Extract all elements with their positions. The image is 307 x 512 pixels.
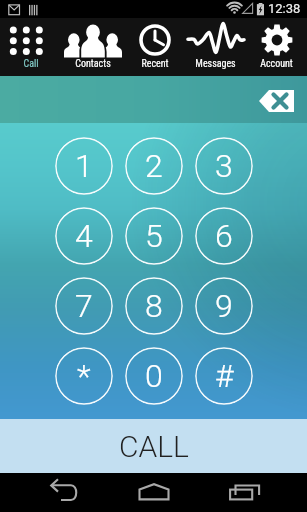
button[interactable]: 7 — [55, 277, 113, 335]
button[interactable]: Messages — [185, 18, 246, 76]
button[interactable]: Recent apps — [216, 473, 274, 512]
button[interactable]: Contacts — [62, 18, 124, 76]
staticText: CALL — [119, 429, 189, 464]
button[interactable]: 5 — [125, 207, 183, 265]
staticText: Call — [23, 58, 39, 70]
button[interactable]: 0 — [125, 347, 183, 405]
staticText: 3 — [215, 147, 233, 185]
staticText: * — [77, 357, 91, 395]
staticText: 7 — [75, 287, 93, 325]
staticText: Recent — [141, 58, 169, 70]
button[interactable]: 6 — [195, 207, 253, 265]
staticText: 8 — [145, 287, 163, 325]
button[interactable]: 4 — [55, 207, 113, 265]
staticText: Messages — [195, 58, 236, 70]
button[interactable]: # — [195, 347, 253, 405]
staticText: 12:38 — [268, 1, 301, 16]
staticText: 0 — [145, 357, 163, 395]
button[interactable]: 9 — [195, 277, 253, 335]
button[interactable]: Backspace — [259, 90, 294, 112]
button[interactable]: 1 — [55, 137, 113, 195]
staticText: Account — [260, 58, 293, 70]
button[interactable]: Recent — [124, 18, 185, 76]
button[interactable]: Account — [246, 18, 307, 76]
staticText: 9 — [215, 287, 233, 325]
button[interactable]: CALL — [0, 419, 307, 473]
button[interactable]: * — [55, 347, 113, 405]
button[interactable]: Home — [125, 473, 182, 512]
staticText: # — [215, 357, 234, 395]
staticText: 2 — [145, 147, 163, 185]
button[interactable]: Call — [0, 18, 62, 76]
button[interactable]: Back — [36, 473, 92, 512]
button[interactable]: 8 — [125, 277, 183, 335]
button[interactable]: 3 — [195, 137, 253, 195]
staticText: 1 — [75, 147, 93, 185]
staticText: 5 — [145, 217, 163, 255]
staticText: 4 — [75, 217, 93, 255]
staticText: 6 — [215, 217, 233, 255]
staticText: Contacts — [75, 58, 111, 70]
button[interactable]: 2 — [125, 137, 183, 195]
